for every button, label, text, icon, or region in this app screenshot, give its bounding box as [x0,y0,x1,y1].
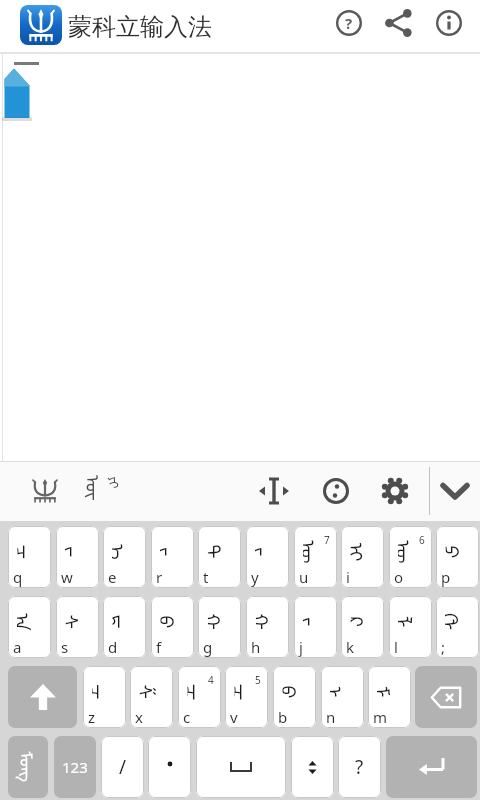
button[interactable]: ᠪ [273,666,316,728]
staticText: ᠢ [350,542,376,561]
button[interactable]: ᠨ [321,666,364,728]
button[interactable]: ᠹ [151,596,194,658]
staticText: v [230,707,238,727]
staticText: ᠽ [92,684,118,700]
staticText: s [61,637,69,657]
staticText: e [108,567,117,587]
staticText: 123 [62,757,88,777]
button[interactable]: 123 [54,736,96,798]
staticText: ᠬ [255,613,281,630]
button[interactable] [382,478,408,504]
button[interactable] [28,476,62,506]
staticText: 7 [324,533,330,547]
button[interactable]: ᠳ [103,596,146,658]
button[interactable]: ᠴ [8,526,51,588]
button[interactable]: / [101,736,144,798]
staticText: ᠮ [377,686,403,698]
button[interactable] [386,10,412,36]
button[interactable]: ? [336,10,362,36]
staticText: i [346,567,350,587]
staticText: h [251,637,261,657]
staticText: n [326,707,336,727]
button[interactable]: ᠢ [341,526,384,588]
staticText: ; [441,637,446,657]
staticText: ᠳ [112,614,138,629]
staticText: g [203,637,213,657]
staticText: ᠿ [445,613,471,631]
staticText: l [394,637,398,657]
button[interactable]: ᠡ [103,526,146,588]
button[interactable] [415,666,477,728]
staticText: ᠵ [303,617,329,627]
staticText: ᠫ [445,545,471,558]
staticText: w [61,567,73,587]
staticText: / [119,754,127,780]
staticText: a [13,637,22,657]
button[interactable]: ᠸ [56,526,99,588]
button[interactable]: ᠭ [198,596,241,658]
button[interactable]: ᠬ [246,596,289,658]
staticText: ᠦ [303,540,329,564]
staticText: ᠶ [255,547,281,557]
staticText: ᠺ [350,616,376,627]
staticText: j [299,637,303,657]
button[interactable] [148,736,191,798]
button[interactable] [386,736,477,798]
button[interactable] [196,736,286,798]
button[interactable]: ᠠ [8,596,51,658]
staticText: ᠴ [17,544,43,559]
button[interactable]: ᠲ [198,526,241,588]
staticText: y [251,567,259,587]
button[interactable]: ᠿ [436,596,479,658]
button[interactable]: ᠷ [151,526,194,588]
button[interactable] [441,483,469,500]
staticText: r [156,567,163,587]
button[interactable]: ᠮᠣᠩ [8,736,48,798]
staticText: ᠮᠣᠩ [14,751,42,782]
staticText: ᠠ [17,613,43,631]
staticText: ᠼ [187,683,213,700]
staticText: x [135,707,143,727]
staticText: ᠰ [65,614,91,629]
staticText: o [394,567,404,587]
staticText: c [183,707,191,727]
button[interactable]: ᠼ [225,666,268,728]
button[interactable] [436,10,462,36]
staticText: ᠱ [139,684,165,699]
staticText: ᠨ [330,686,356,698]
button[interactable] [8,666,77,728]
staticText: k [346,637,355,657]
staticText: q [13,567,23,587]
button[interactable] [258,477,290,505]
button[interactable] [291,736,334,798]
button[interactable] [20,5,62,45]
staticText: ᠭ [207,613,233,630]
staticText: ? [345,13,353,33]
button[interactable]: ? [338,736,381,798]
staticText: 6 [419,533,425,547]
staticText: 4 [208,673,214,687]
button[interactable]: ᠥ [389,526,432,588]
button[interactable]: ᠮ [368,666,411,728]
staticText: z [88,707,96,727]
staticText: ᠶᠢ [104,476,127,488]
button[interactable]: ᠽ [83,666,126,728]
button[interactable] [323,478,349,504]
button[interactable]: ᠫ [436,526,479,588]
staticText: t [203,567,209,587]
button[interactable]: ᠱ [130,666,173,728]
button[interactable]: ᠦ [294,526,337,588]
staticText: ᠲ [207,544,233,559]
staticText: 蒙科立输入法 [68,12,212,42]
staticText: ᠯ [398,616,424,628]
staticText: ᠷ [160,547,186,557]
button[interactable]: ᠶ [246,526,289,588]
button[interactable]: ᠰ [56,596,99,658]
staticText: ᠼ [234,683,260,700]
staticText: ᠦᠰᠦᠭ [72,475,112,507]
staticText: m [373,707,388,727]
button[interactable]: ᠼ [178,666,221,728]
button[interactable]: ᠵ [294,596,337,658]
button[interactable]: ᠯ [389,596,432,658]
button[interactable]: ᠺ [341,596,384,658]
